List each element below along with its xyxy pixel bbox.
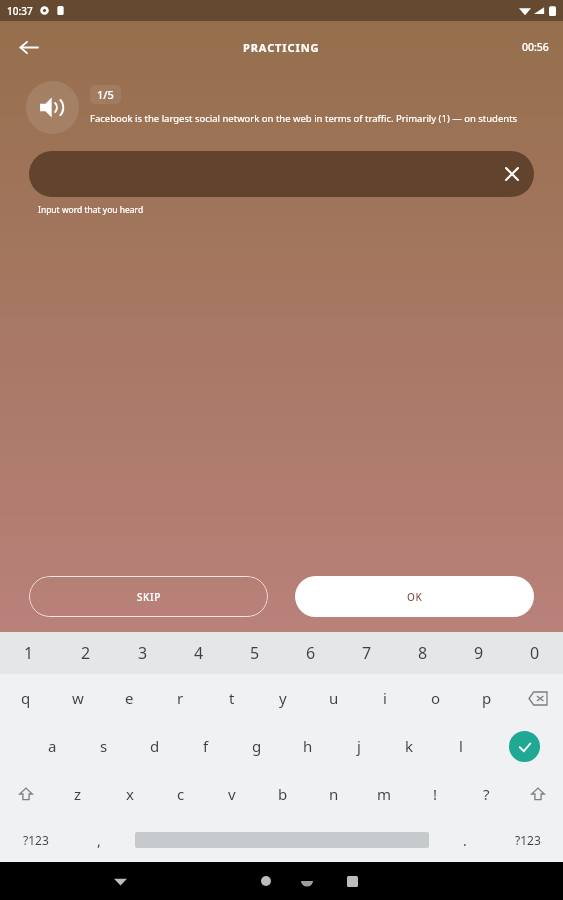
button[interactable]: Clear — [29, 151, 534, 197]
button[interactable]: r — [155, 674, 206, 722]
staticText: 7 — [362, 642, 372, 664]
staticText: p — [482, 688, 492, 708]
button[interactable]: 6 — [283, 632, 339, 674]
staticText: OK — [407, 590, 423, 604]
staticText: i — [383, 688, 387, 708]
staticText: o — [431, 688, 441, 708]
button[interactable]: 0 — [507, 632, 563, 674]
button[interactable]: v — [206, 770, 257, 818]
button[interactable]: 1 — [0, 632, 57, 674]
staticText: f — [203, 736, 209, 756]
staticText: 5 — [250, 642, 260, 664]
staticText: a — [48, 736, 57, 756]
button[interactable]: 5 — [227, 632, 283, 674]
staticText: 0 — [530, 642, 540, 664]
staticText: 9 — [474, 642, 484, 664]
button[interactable]: o — [410, 674, 461, 722]
button[interactable]: 8 — [395, 632, 451, 674]
button[interactable]: Back — [8, 27, 48, 67]
button[interactable]: . — [437, 818, 493, 862]
staticText: . — [463, 831, 467, 850]
button[interactable]: ?123 — [493, 818, 563, 862]
staticText: ! — [433, 784, 438, 804]
staticText: m — [377, 784, 392, 804]
staticText: s — [100, 736, 108, 756]
button[interactable]: Shift — [512, 770, 563, 818]
button[interactable]: k — [384, 722, 435, 770]
button[interactable]: b — [257, 770, 308, 818]
button[interactable]: 7 — [339, 632, 395, 674]
button[interactable]: g — [231, 722, 282, 770]
staticText: 00:56 — [522, 40, 549, 54]
button[interactable]: z — [52, 770, 104, 818]
staticText: h — [303, 736, 313, 756]
staticText: 1 — [24, 642, 34, 664]
button[interactable]: Keyboard — [293, 867, 321, 895]
button[interactable]: Home — [249, 864, 283, 898]
staticText: q — [21, 688, 31, 708]
staticText: 1/5 — [97, 87, 114, 102]
button[interactable]: Shift — [0, 770, 52, 818]
button[interactable]: x — [104, 770, 155, 818]
button[interactable]: Clear — [496, 158, 528, 190]
staticText: SKIP — [137, 590, 161, 604]
staticText: , — [97, 831, 101, 850]
button[interactable]: s — [78, 722, 129, 770]
staticText: n — [329, 784, 339, 804]
staticText: PRACTICING — [243, 40, 320, 55]
staticText: k — [405, 736, 414, 756]
button[interactable]: , — [71, 818, 127, 862]
button[interactable]: Recents — [335, 864, 369, 898]
button[interactable]: j — [333, 722, 384, 770]
staticText: r — [177, 688, 184, 708]
staticText: ? — [483, 784, 490, 804]
staticText: v — [228, 784, 236, 804]
staticText: e — [125, 688, 134, 708]
staticText: t — [229, 688, 235, 708]
button[interactable]: c — [155, 770, 206, 818]
staticText: l — [459, 736, 463, 756]
staticText: 6 — [306, 642, 316, 664]
button[interactable]: 2 — [57, 632, 114, 674]
button[interactable]: ? — [461, 770, 512, 818]
button[interactable]: i — [359, 674, 410, 722]
staticText: x — [126, 784, 134, 804]
button[interactable]: f — [180, 722, 231, 770]
staticText: u — [329, 688, 339, 708]
staticText: b — [278, 784, 288, 804]
staticText: c — [177, 784, 185, 804]
button[interactable]: e — [104, 674, 155, 722]
staticText: Input word that you heard — [38, 204, 144, 216]
button[interactable]: Back — [103, 864, 137, 898]
button[interactable]: Play audio — [26, 81, 79, 134]
button[interactable]: d — [129, 722, 180, 770]
button[interactable]: l — [435, 722, 486, 770]
button[interactable]: h — [282, 722, 333, 770]
staticText: 8 — [418, 642, 428, 664]
button[interactable]: 4 — [171, 632, 227, 674]
staticText: z — [74, 784, 82, 804]
staticText: 2 — [81, 642, 91, 664]
staticText: j — [357, 736, 361, 756]
staticText: 3 — [138, 642, 148, 664]
button[interactable]: u — [308, 674, 359, 722]
button[interactable]: Enter — [486, 722, 563, 770]
button[interactable]: ?123 — [0, 818, 71, 862]
button[interactable]: n — [308, 770, 359, 818]
button[interactable]: t — [206, 674, 257, 722]
button[interactable]: a — [27, 722, 78, 770]
button[interactable]: SKIP — [29, 576, 268, 617]
button[interactable]: Backspace — [512, 674, 563, 722]
staticText: 10:37 — [7, 4, 33, 18]
button[interactable]: ! — [410, 770, 461, 818]
button[interactable]: 3 — [114, 632, 171, 674]
button[interactable]: p — [461, 674, 512, 722]
button[interactable]: m — [359, 770, 410, 818]
button[interactable]: OK — [295, 576, 534, 617]
staticText: d — [150, 736, 160, 756]
button[interactable]: q — [0, 674, 52, 722]
button[interactable]: y — [257, 674, 308, 722]
button[interactable]: 9 — [451, 632, 507, 674]
button[interactable]: w — [52, 674, 104, 722]
